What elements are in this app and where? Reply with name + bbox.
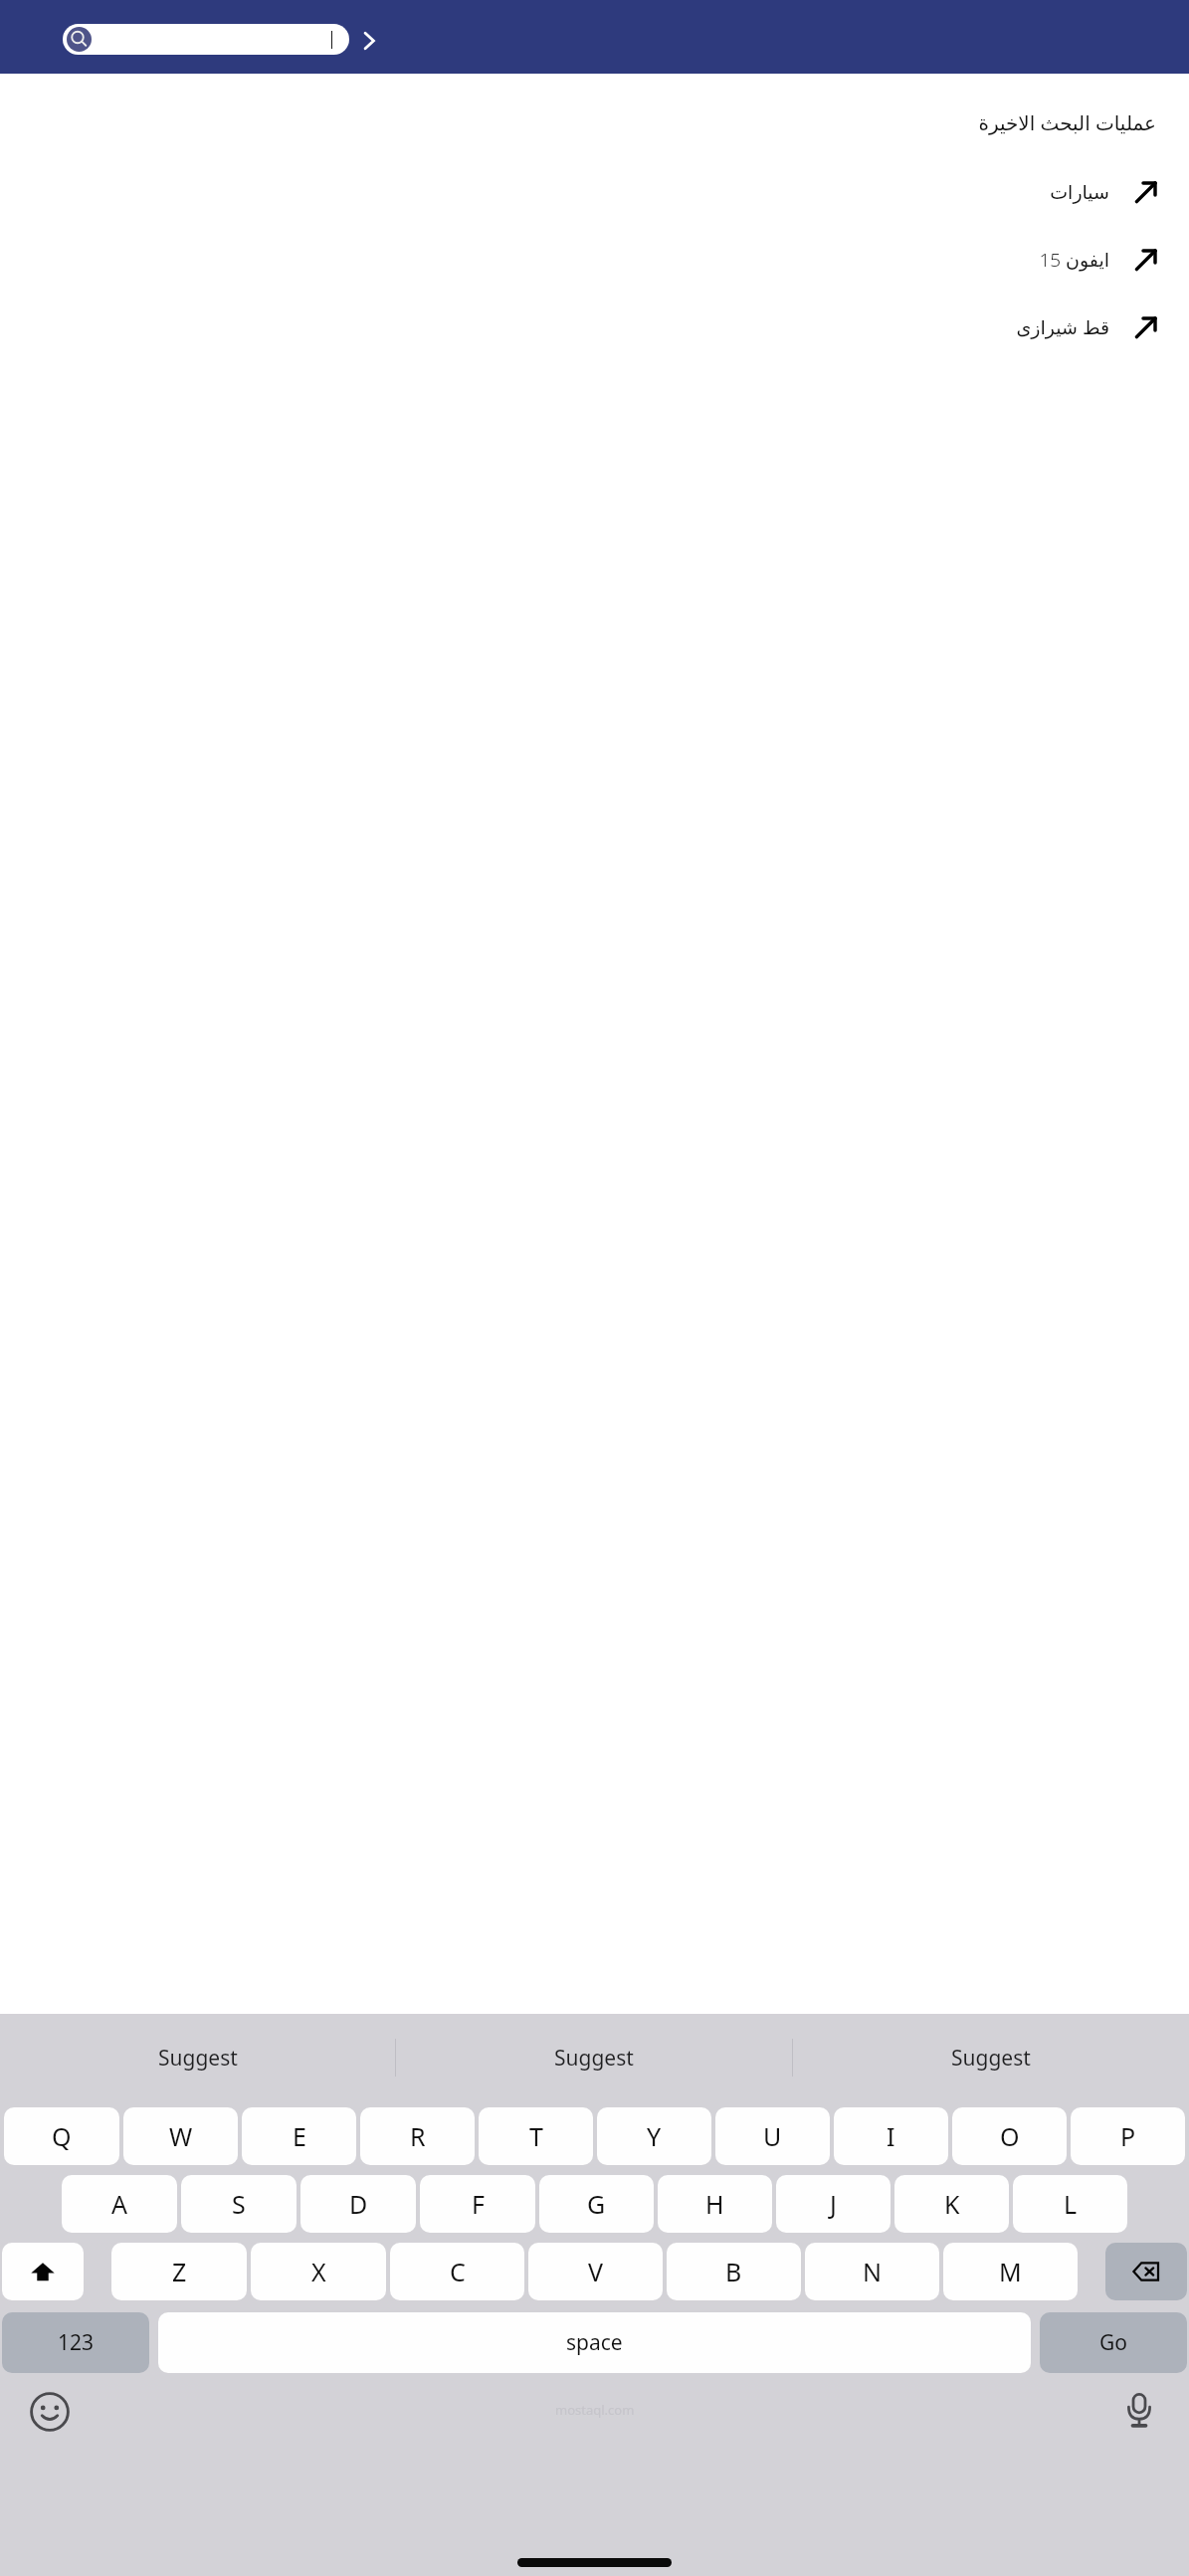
button[interactable]: N xyxy=(805,2243,939,2300)
staticText: L xyxy=(1064,2187,1078,2221)
button[interactable]: ايفون 15 xyxy=(0,238,1189,282)
staticText: Suggest xyxy=(554,2044,634,2073)
button[interactable]: Suggest xyxy=(793,2014,1189,2101)
button[interactable]: Voice input xyxy=(1116,2387,1162,2433)
button[interactable]: Suggest xyxy=(396,2014,792,2101)
staticText: R xyxy=(410,2119,426,2153)
button[interactable]: F xyxy=(420,2175,535,2233)
staticText: Y xyxy=(647,2119,662,2153)
button[interactable]: Search xyxy=(67,27,92,52)
button[interactable]: K xyxy=(894,2175,1009,2233)
staticText: O xyxy=(1000,2119,1020,2153)
button[interactable]: قط شيرازى xyxy=(0,305,1189,349)
button[interactable]: Emoji xyxy=(27,2389,73,2435)
button[interactable]: Z xyxy=(111,2243,247,2300)
staticText: P xyxy=(1120,2119,1136,2153)
button[interactable]: R xyxy=(360,2107,475,2165)
button[interactable]: O xyxy=(952,2107,1067,2165)
button[interactable]: L xyxy=(1013,2175,1127,2233)
button[interactable]: W xyxy=(123,2107,238,2165)
button[interactable]: J xyxy=(776,2175,891,2233)
staticText: X xyxy=(311,2255,326,2288)
button[interactable]: سيارات xyxy=(0,170,1189,214)
button[interactable]: B xyxy=(667,2243,801,2300)
button[interactable]: D xyxy=(300,2175,416,2233)
staticText: D xyxy=(349,2187,368,2221)
staticText: W xyxy=(169,2119,193,2153)
staticText: space xyxy=(566,2328,623,2357)
staticText: Suggest xyxy=(158,2044,238,2073)
button[interactable]: E xyxy=(242,2107,356,2165)
button[interactable]: P xyxy=(1071,2107,1185,2165)
button[interactable]: Search xyxy=(63,24,349,55)
staticText: I xyxy=(887,2119,895,2153)
staticText: Q xyxy=(52,2119,72,2153)
staticText: S xyxy=(232,2187,246,2221)
staticText: V xyxy=(588,2255,604,2288)
staticText: G xyxy=(587,2187,606,2221)
staticText: mostaql.com xyxy=(555,2401,635,2419)
staticText: F xyxy=(472,2187,485,2221)
button[interactable]: M xyxy=(943,2243,1078,2300)
button[interactable]: Backspace xyxy=(1105,2243,1187,2300)
button[interactable]: Y xyxy=(597,2107,711,2165)
staticText: H xyxy=(705,2187,724,2221)
button[interactable]: Submit search xyxy=(355,27,383,55)
staticText: U xyxy=(763,2119,782,2153)
button[interactable]: U xyxy=(715,2107,830,2165)
staticText: M xyxy=(999,2255,1022,2288)
button[interactable]: H xyxy=(658,2175,772,2233)
button[interactable]: space xyxy=(158,2312,1031,2373)
staticText: 123 xyxy=(58,2328,95,2357)
staticText: K xyxy=(944,2187,960,2221)
button[interactable]: V xyxy=(528,2243,663,2300)
button[interactable]: C xyxy=(390,2243,524,2300)
button[interactable]: Suggest xyxy=(0,2014,395,2101)
staticText: A xyxy=(111,2187,127,2221)
staticText: Z xyxy=(172,2255,187,2288)
staticText: T xyxy=(529,2119,543,2153)
staticText: Go xyxy=(1099,2328,1127,2357)
button[interactable]: G xyxy=(539,2175,654,2233)
staticText: B xyxy=(725,2255,742,2288)
staticText: E xyxy=(293,2119,306,2153)
button[interactable]: 123 xyxy=(2,2312,149,2373)
staticText: C xyxy=(450,2255,466,2288)
button[interactable]: Go xyxy=(1040,2312,1187,2373)
staticText: N xyxy=(863,2255,883,2288)
button[interactable]: A xyxy=(62,2175,177,2233)
button[interactable]: X xyxy=(251,2243,386,2300)
button[interactable]: T xyxy=(479,2107,593,2165)
button[interactable]: I xyxy=(834,2107,948,2165)
button[interactable]: Shift xyxy=(2,2243,84,2300)
button[interactable]: Q xyxy=(4,2107,119,2165)
button[interactable]: S xyxy=(181,2175,297,2233)
staticText: سيارات xyxy=(1050,181,1109,203)
staticText: قط شيرازى xyxy=(1016,314,1109,340)
staticText: Suggest xyxy=(951,2044,1031,2073)
staticText: J xyxy=(830,2187,837,2221)
staticText: ايفون 15 xyxy=(1039,247,1109,273)
staticText: عمليات البحث الاخيرة xyxy=(0,109,1156,136)
